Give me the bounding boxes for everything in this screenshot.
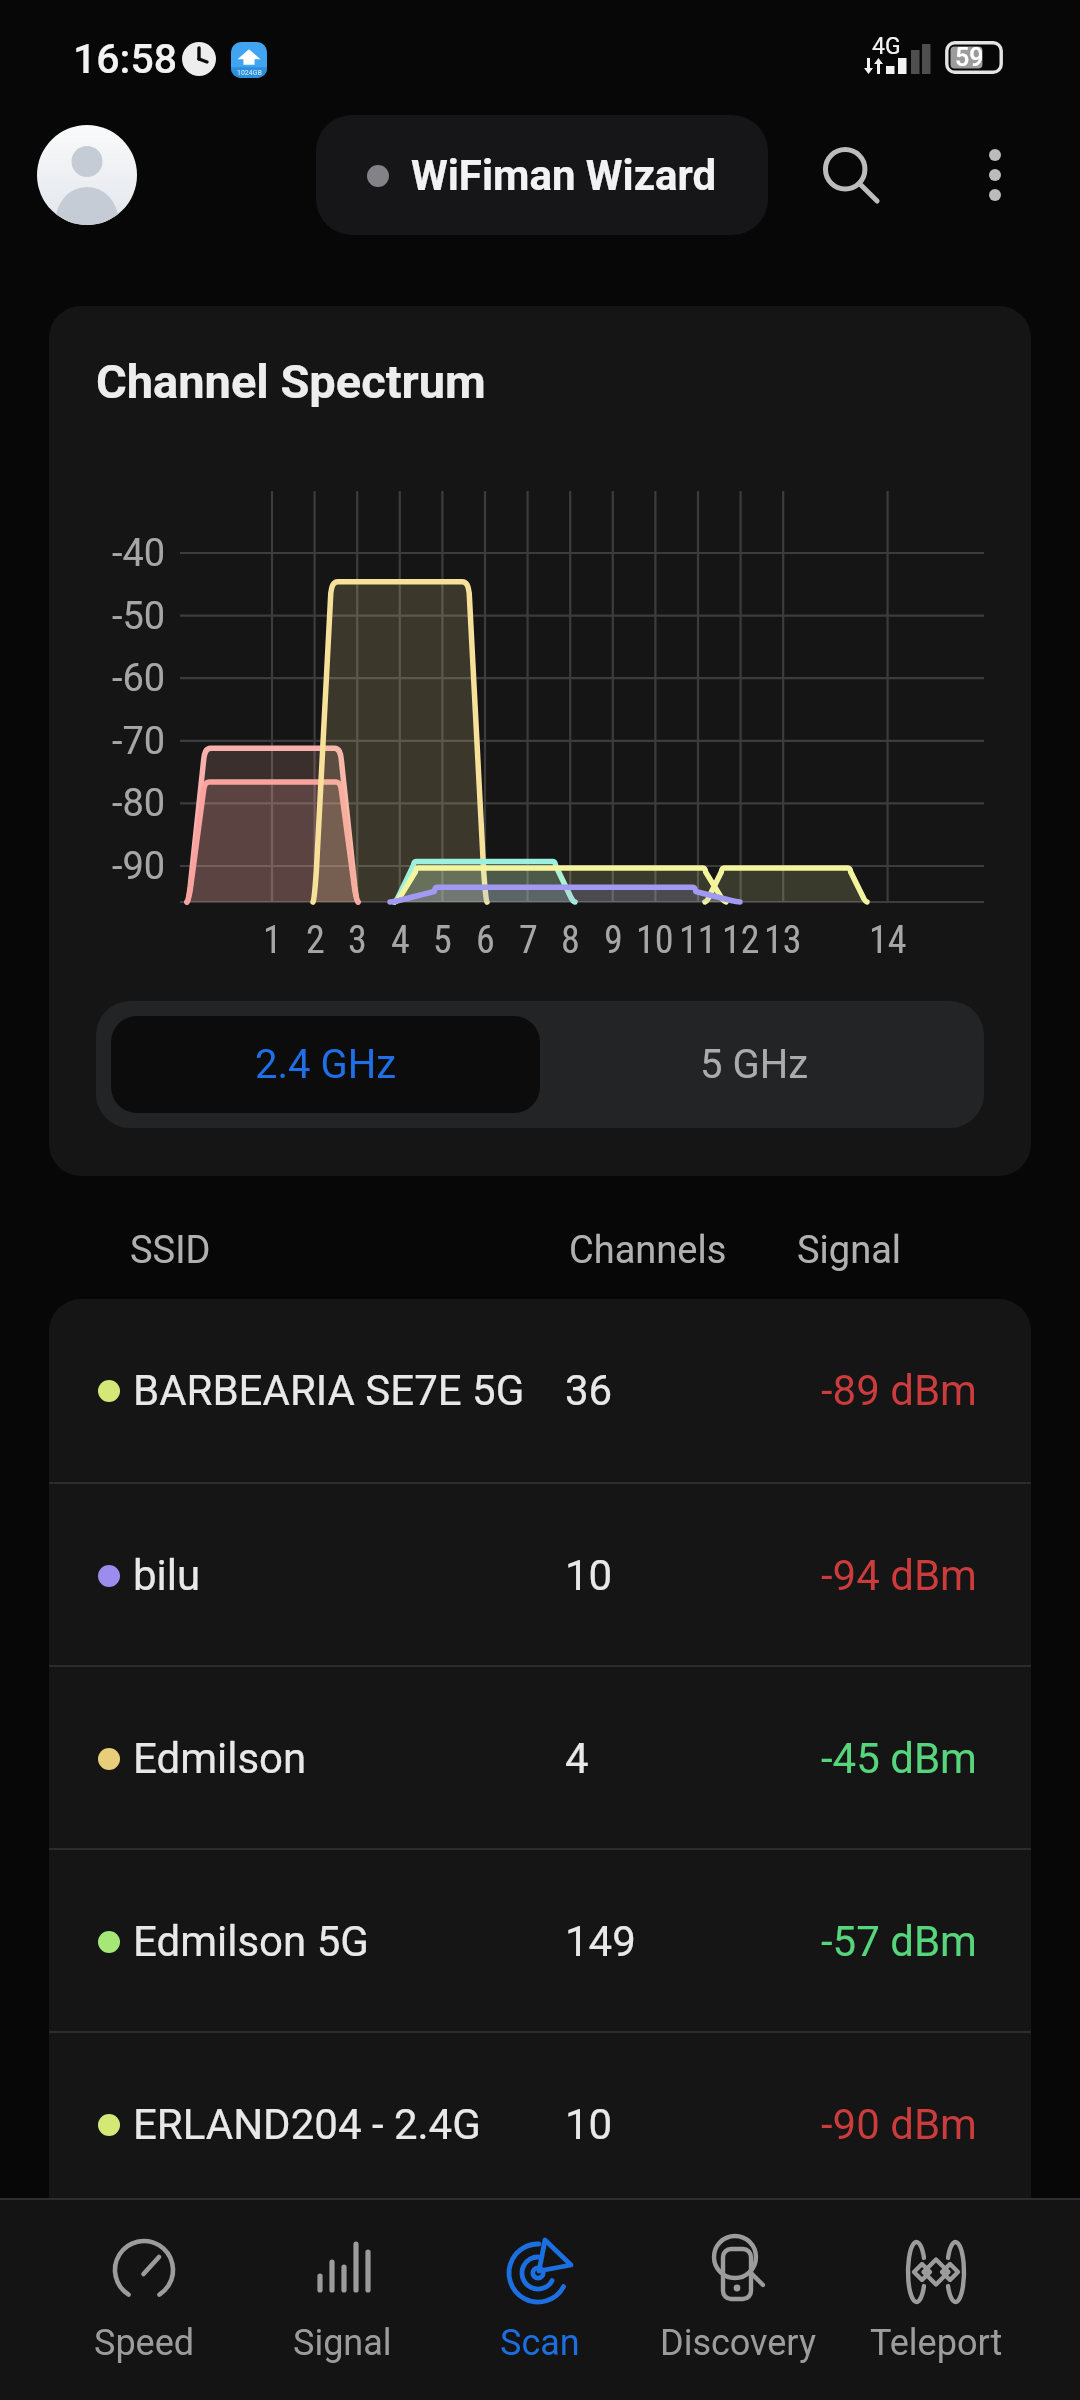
button[interactable]: Discovery <box>639 2200 837 2400</box>
staticText: 11 <box>679 918 717 963</box>
button[interactable]: Scan <box>441 2200 639 2400</box>
staticText: 1024GB <box>237 69 262 77</box>
staticText: -89 dBm <box>821 1366 977 1415</box>
staticText: 2.4 GHz <box>255 1041 397 1088</box>
staticText: 5 <box>433 918 452 963</box>
staticText: 7 <box>519 918 538 963</box>
staticText: -57 dBm <box>821 1917 977 1966</box>
staticText: Teleport <box>870 2322 1003 2364</box>
staticText: Signal <box>797 1228 902 1273</box>
staticText: -80 <box>112 781 166 826</box>
staticText: -50 <box>112 594 166 639</box>
staticText: -45 dBm <box>821 1734 977 1783</box>
staticText: -90 <box>112 844 166 889</box>
staticText: 16:58 <box>73 35 178 83</box>
button[interactable]: WiFiman Wizard <box>316 115 768 235</box>
staticText: Scan <box>500 2322 580 2364</box>
button[interactable]: More options <box>950 130 1040 220</box>
button[interactable]: 5 GHz <box>540 1016 969 1113</box>
staticText: -40 <box>112 531 166 576</box>
staticText: 2 <box>306 918 325 963</box>
button[interactable]: Teleport <box>837 2200 1035 2400</box>
staticText: 1 <box>263 918 282 963</box>
staticText: 4 <box>391 918 410 963</box>
staticText: 149 <box>565 1917 636 1966</box>
button[interactable]: Speed <box>45 2200 243 2400</box>
staticText: 59 <box>955 43 984 72</box>
staticText: 13 <box>764 918 802 963</box>
button[interactable]: ERLAND204 - 2.4G <box>49 2033 1031 2198</box>
staticText: -90 dBm <box>821 2100 977 2149</box>
staticText: BARBEARIA SE7E 5G <box>133 1366 525 1415</box>
staticText: -94 dBm <box>821 1551 977 1600</box>
button[interactable]: BARBEARIA SE7E 5G <box>49 1299 1031 1482</box>
button[interactable]: Edmilson 5G <box>49 1850 1031 2033</box>
button[interactable]: Edmilson <box>49 1667 1031 1850</box>
staticText: 9 <box>604 918 623 963</box>
staticText: Speed <box>94 2322 195 2364</box>
staticText: 4 <box>565 1734 589 1783</box>
button[interactable]: Profile <box>37 125 137 225</box>
staticText: 12 <box>722 918 760 963</box>
button[interactable]: Search <box>801 125 901 225</box>
staticText: -60 <box>112 656 166 701</box>
staticText: 10 <box>565 1551 613 1600</box>
staticText: Signal <box>293 2322 392 2364</box>
staticText: SSID <box>130 1228 211 1273</box>
staticText: -70 <box>112 719 166 764</box>
staticText: 36 <box>565 1366 613 1415</box>
staticText: WiFiman Wizard <box>411 151 717 200</box>
button[interactable]: 2.4 GHz <box>111 1016 540 1113</box>
button[interactable]: Signal <box>243 2200 441 2400</box>
staticText: 14 <box>869 918 907 963</box>
staticText: 4G <box>872 33 901 60</box>
staticText: 10 <box>636 918 674 963</box>
staticText: Discovery <box>660 2322 816 2364</box>
staticText: Edmilson <box>133 1734 307 1783</box>
staticText: ERLAND204 - 2.4G <box>133 2100 481 2149</box>
staticText: 3 <box>348 918 367 963</box>
staticText: Channels <box>569 1228 727 1273</box>
staticText: Edmilson 5G <box>133 1917 369 1966</box>
staticText: 5 GHz <box>700 1041 809 1088</box>
staticText: 6 <box>476 918 495 963</box>
staticText: 8 <box>561 918 580 963</box>
staticText: bilu <box>133 1551 201 1600</box>
button[interactable]: bilu <box>49 1484 1031 1667</box>
staticText: Channel Spectrum <box>96 354 486 409</box>
staticText: 10 <box>565 2100 613 2149</box>
